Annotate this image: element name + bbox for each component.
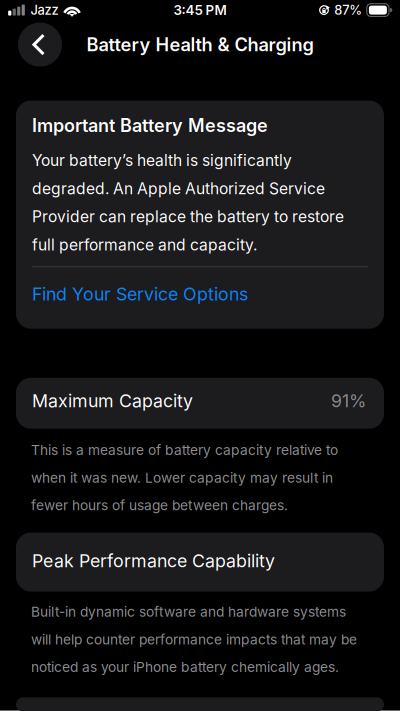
staticText: Peak Performance Capability (32, 550, 275, 572)
staticText: 3:45 PM (173, 2, 226, 18)
staticText: Built-in dynamic software and hardware s… (31, 604, 357, 675)
staticText: This is a measure of battery capacity re… (31, 442, 338, 514)
button[interactable]: Peak Performance Capability (16, 533, 384, 592)
staticText: Jazz (30, 2, 58, 18)
button[interactable]: Maximum Capacity (16, 378, 384, 429)
staticText: 87% (334, 2, 362, 18)
button[interactable]: Find Your Service Options (32, 267, 368, 312)
staticText: 91% (331, 390, 366, 411)
staticText: Maximum Capacity (32, 390, 193, 411)
staticText: Find Your Service Options (32, 283, 248, 305)
staticText: Battery Health & Charging (86, 33, 313, 56)
staticText: Important Battery Message (32, 115, 268, 136)
staticText: Your battery’s health is significantly d… (32, 151, 344, 254)
button[interactable]: Back (18, 23, 62, 67)
